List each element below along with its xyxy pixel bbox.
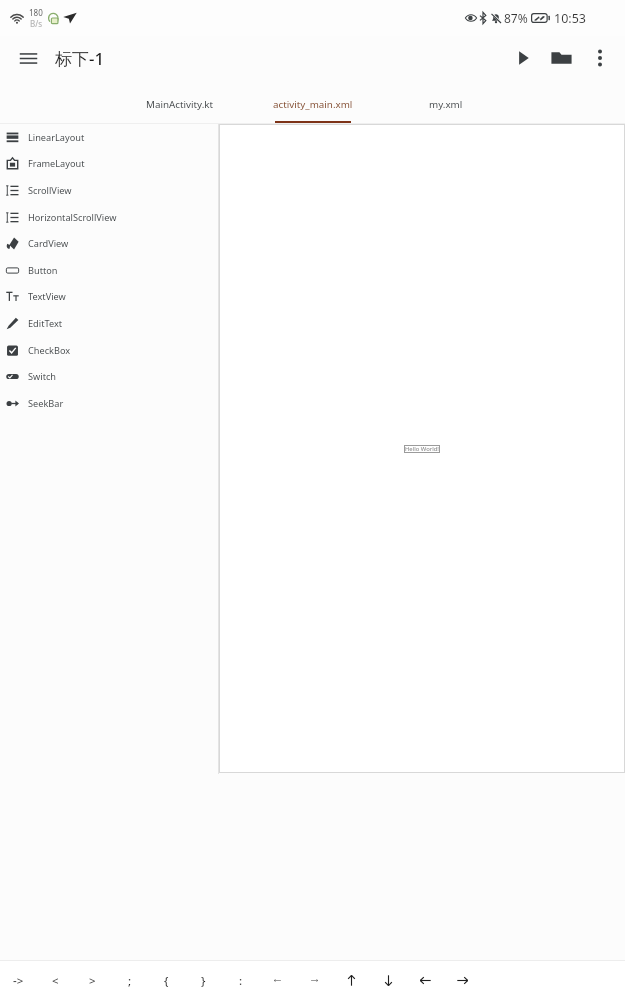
button[interactable]: Undo <box>259 961 296 1000</box>
button[interactable]: } <box>185 961 222 1000</box>
staticText: Hello World! <box>405 445 439 453</box>
button[interactable]: Button <box>0 257 218 284</box>
button[interactable]: Files <box>543 36 579 80</box>
staticText: : <box>239 973 243 989</box>
staticText: HorizontalScrollView <box>28 211 117 224</box>
staticText: MainActivity.kt <box>146 98 214 111</box>
staticText: TextView <box>28 290 66 303</box>
button[interactable]: More options <box>579 36 621 80</box>
staticText: 87% <box>504 10 528 26</box>
button[interactable]: HorizontalScrollView <box>0 204 218 231</box>
staticText: activity_main.xml <box>273 98 353 111</box>
staticText: ; <box>128 973 132 989</box>
staticText: B/s <box>30 18 43 29</box>
button[interactable]: EditText <box>0 310 218 337</box>
staticText: } <box>201 973 206 989</box>
button[interactable]: SeekBar <box>0 390 218 417</box>
button[interactable]: { <box>148 961 185 1000</box>
staticText: CardView <box>28 237 69 250</box>
staticText: LinearLayout <box>28 131 85 144</box>
button[interactable]: ; <box>111 961 148 1000</box>
staticText: ScrollView <box>28 184 72 197</box>
staticText: EditText <box>28 317 63 330</box>
button[interactable]: Move left <box>407 961 444 1000</box>
button[interactable]: CardView <box>0 230 218 257</box>
staticText: 10:53 <box>554 10 586 27</box>
button[interactable]: < <box>37 961 74 1000</box>
button[interactable]: ScrollView <box>0 177 218 204</box>
button[interactable]: FrameLayout <box>0 150 218 177</box>
button[interactable]: : <box>222 961 259 1000</box>
staticText: Button <box>28 264 58 277</box>
staticText: < <box>52 973 59 989</box>
staticText: 标下-1 <box>55 47 105 70</box>
button[interactable]: CheckBox <box>0 337 218 364</box>
button[interactable]: Move down <box>370 961 407 1000</box>
staticText: > <box>89 973 96 989</box>
button[interactable]: -> <box>0 961 37 1000</box>
staticText: SeekBar <box>28 397 64 410</box>
staticText: FrameLayout <box>28 157 85 170</box>
button[interactable]: > <box>74 961 111 1000</box>
button[interactable]: Switch <box>0 363 218 390</box>
button[interactable]: Move up <box>333 961 370 1000</box>
staticText: -> <box>13 973 24 989</box>
staticText: Switch <box>28 370 57 383</box>
button[interactable]: TextView <box>0 283 218 310</box>
staticText: my.xml <box>429 98 463 111</box>
button[interactable]: Redo <box>296 961 333 1000</box>
staticText: 180 <box>29 7 43 18</box>
button[interactable]: Run <box>504 36 543 80</box>
button[interactable]: activity_main.xml <box>246 84 379 124</box>
button[interactable]: Navigation menu <box>8 38 48 78</box>
staticText: CheckBox <box>28 344 71 357</box>
staticText: { <box>164 973 169 989</box>
button[interactable]: Move right <box>444 961 481 1000</box>
button[interactable]: my.xml <box>379 84 512 124</box>
button[interactable]: LinearLayout <box>0 124 218 151</box>
button[interactable]: Hello World! <box>404 445 440 453</box>
button[interactable]: MainActivity.kt <box>113 84 246 124</box>
